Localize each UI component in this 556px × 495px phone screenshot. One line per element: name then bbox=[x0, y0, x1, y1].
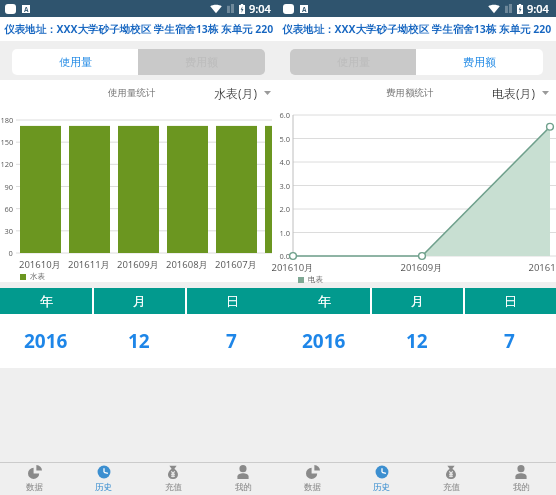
staticText: 我的 bbox=[513, 482, 530, 493]
button[interactable]: 月 bbox=[94, 288, 185, 314]
button[interactable]: 水表(月) bbox=[214, 85, 271, 101]
button[interactable]: 数据 bbox=[278, 463, 347, 495]
staticText: 2016 bbox=[302, 328, 346, 354]
staticText: A bbox=[302, 5, 307, 13]
staticText: 12 bbox=[406, 328, 428, 354]
button[interactable]: 年 bbox=[0, 288, 92, 314]
staticText: 费用额 bbox=[185, 55, 218, 69]
staticText: 我的 bbox=[235, 482, 252, 493]
button[interactable]: 日 bbox=[187, 288, 278, 314]
button[interactable]: 7 bbox=[185, 314, 278, 368]
staticText: 水表(月) bbox=[214, 85, 258, 101]
staticText: 9:04 bbox=[249, 1, 271, 16]
staticText: 7 bbox=[504, 328, 515, 354]
button[interactable]: 数据 bbox=[0, 463, 69, 495]
staticText: 年 bbox=[318, 293, 331, 309]
button[interactable]: 充值 bbox=[138, 463, 208, 495]
button[interactable]: 电表(月) bbox=[492, 85, 549, 101]
button[interactable]: 费用额 bbox=[416, 49, 543, 75]
staticText: 仪表地址：XXX大学砂子坳校区 学生宿舍13栋 东单元 220 bbox=[4, 22, 274, 36]
button[interactable]: 我的 bbox=[486, 463, 556, 495]
button[interactable]: 月 bbox=[372, 288, 463, 314]
staticText: 月 bbox=[411, 293, 424, 309]
staticText: 历史 bbox=[95, 482, 112, 493]
staticText: 7 bbox=[226, 328, 237, 354]
staticText: 日 bbox=[504, 293, 517, 309]
button[interactable]: 12 bbox=[370, 314, 463, 368]
button[interactable]: 使用量 bbox=[12, 49, 138, 75]
button[interactable]: 2016 bbox=[0, 314, 92, 368]
button[interactable]: 历史 bbox=[69, 463, 138, 495]
staticText: 日 bbox=[226, 293, 239, 309]
staticText: 费用额 bbox=[463, 55, 496, 69]
staticText: 数据 bbox=[26, 482, 43, 493]
staticText: 充值 bbox=[443, 482, 460, 493]
staticText: 费用额统计 bbox=[386, 87, 434, 99]
button[interactable]: 历史 bbox=[347, 463, 416, 495]
button[interactable]: 7 bbox=[463, 314, 556, 368]
staticText: 使用量 bbox=[337, 55, 370, 69]
staticText: 充值 bbox=[165, 482, 182, 493]
button[interactable]: 充值 bbox=[416, 463, 486, 495]
staticText: 电表(月) bbox=[492, 85, 536, 101]
staticText: 仪表地址：XXX大学砂子坳校区 学生宿舍13栋 东单元 220 bbox=[282, 22, 552, 36]
staticText: 12 bbox=[128, 328, 150, 354]
staticText: 2016 bbox=[24, 328, 68, 354]
staticText: 月 bbox=[133, 293, 146, 309]
staticText: A bbox=[24, 5, 29, 13]
staticText: 使用量统计 bbox=[108, 87, 156, 99]
button[interactable]: 2016 bbox=[278, 314, 370, 368]
button[interactable]: 我的 bbox=[208, 463, 278, 495]
button[interactable]: 年 bbox=[278, 288, 370, 314]
staticText: 历史 bbox=[373, 482, 390, 493]
button[interactable]: 12 bbox=[92, 314, 185, 368]
staticText: 9:04 bbox=[527, 1, 549, 16]
staticText: 年 bbox=[40, 293, 53, 309]
button[interactable]: 日 bbox=[465, 288, 556, 314]
staticText: 使用量 bbox=[59, 55, 92, 69]
staticText: 数据 bbox=[304, 482, 321, 493]
